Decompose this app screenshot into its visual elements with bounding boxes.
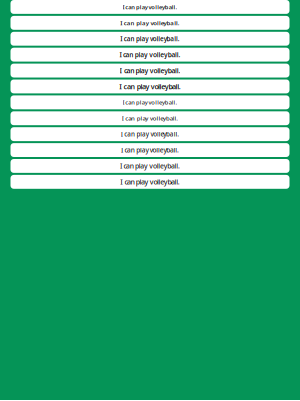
staticText: I can play volleyball. xyxy=(120,177,180,187)
staticText: I can play volleyball. xyxy=(119,82,181,91)
staticText: I can play volleyball. xyxy=(122,98,177,106)
staticText: I can play volleyball. xyxy=(120,161,180,171)
staticText: I can play volleyball. xyxy=(121,146,179,154)
staticText: I can play volleyball. xyxy=(120,34,180,43)
staticText: I can play volleyball. xyxy=(119,50,180,59)
staticText: I can play volleyball. xyxy=(121,130,179,138)
staticText: I can play volleyball. xyxy=(122,3,177,11)
staticText: I can play volleyball. xyxy=(122,114,178,122)
staticText: I can play volleyball. xyxy=(120,66,180,75)
staticText: I can play volleyball. xyxy=(120,19,180,27)
